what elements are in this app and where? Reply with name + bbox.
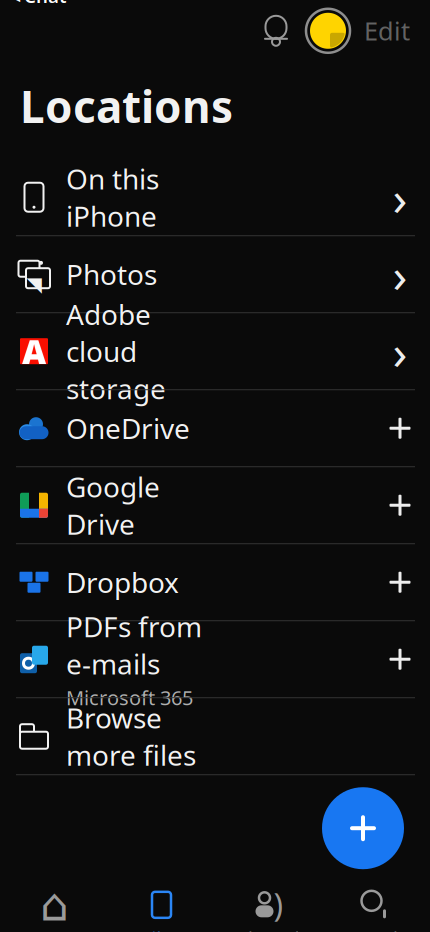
button[interactable]: Edit [356, 7, 418, 55]
button[interactable]: Dropbox [0, 544, 430, 620]
button[interactable]: Google Drive [0, 467, 430, 543]
staticText: On this iPhone [66, 160, 159, 234]
staticText: Chat [24, 0, 67, 8]
staticText: A [22, 329, 46, 373]
staticText: OneDrive [66, 410, 190, 447]
button[interactable]: ⌂ [1, 885, 108, 932]
staticText: ) [273, 884, 283, 926]
button[interactable]: PDFs from e-mails [0, 621, 430, 697]
button[interactable]: ) [215, 885, 322, 932]
button[interactable]: ◀ [10, 0, 120, 8]
button[interactable]: ◥ [0, 236, 430, 312]
staticText: Dropbox [66, 564, 179, 601]
button[interactable]: Storage [302, 5, 354, 57]
staticText: Locations [20, 77, 233, 135]
staticText: Google Drive [66, 468, 160, 542]
button[interactable]: Browse more files [0, 698, 430, 774]
staticText: › [392, 319, 407, 383]
staticText: PDFs from e-mails [66, 608, 202, 682]
staticText: ◥ [26, 273, 41, 296]
button[interactable]: Notifications [252, 7, 300, 55]
button[interactable]: On this iPhone [0, 159, 430, 235]
staticText: Shared [238, 926, 299, 932]
staticText: › [392, 165, 407, 229]
button[interactable]: Create [318, 783, 408, 873]
staticText: Microsoft 365 [66, 684, 193, 711]
staticText: › [392, 242, 407, 306]
staticText: Search [346, 926, 405, 932]
staticText: Files [141, 926, 181, 932]
staticText: ⌂ [40, 879, 69, 931]
staticText: Adobe cloud storage [66, 295, 166, 407]
button[interactable]: A [0, 313, 430, 389]
button[interactable]: OneDrive [0, 390, 430, 466]
staticText: Edit [364, 14, 410, 48]
staticText: Photos [66, 256, 157, 293]
staticText: ◀ [10, 0, 20, 3]
button[interactable]: Files [108, 885, 215, 932]
button[interactable]: Search [322, 885, 429, 932]
staticText: Browse more files [66, 699, 196, 773]
